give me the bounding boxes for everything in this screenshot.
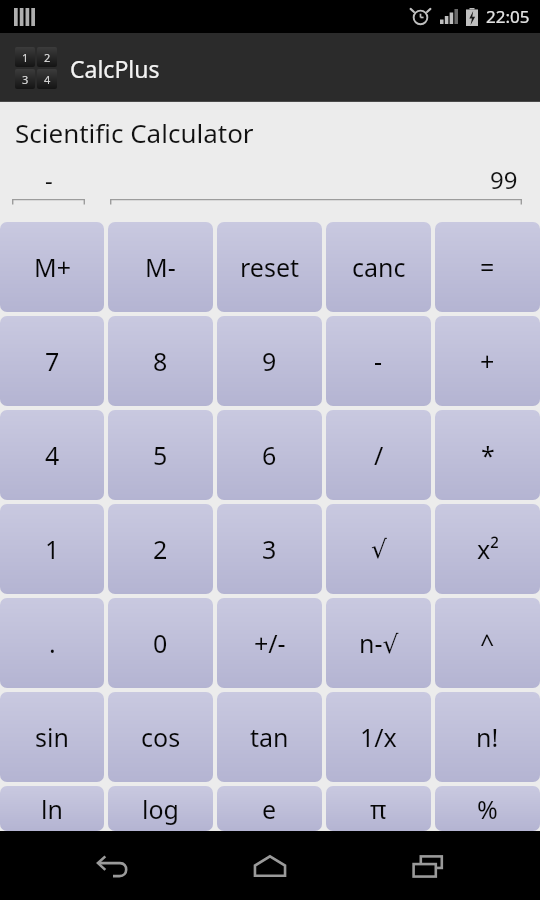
staticText: ^ bbox=[480, 626, 495, 660]
button[interactable]: 2 bbox=[108, 504, 213, 594]
staticText: π bbox=[370, 792, 387, 826]
button[interactable]: π bbox=[326, 786, 431, 831]
button[interactable]: 0 bbox=[108, 598, 213, 688]
staticText: +/- bbox=[254, 626, 286, 660]
button[interactable]: - bbox=[326, 316, 431, 406]
button[interactable]: n-√ bbox=[326, 598, 431, 688]
staticText: cos bbox=[141, 720, 181, 754]
staticText: % bbox=[477, 792, 498, 826]
button[interactable]: tan bbox=[217, 692, 322, 782]
staticText: 2 bbox=[44, 50, 51, 65]
button[interactable]: x² bbox=[435, 504, 540, 594]
staticText: 1 bbox=[22, 50, 29, 65]
staticText: sin bbox=[35, 720, 69, 754]
button[interactable]: 1/x bbox=[326, 692, 431, 782]
staticText: 3 bbox=[22, 72, 29, 87]
button[interactable]: Recent apps bbox=[383, 831, 473, 900]
staticText: 99 bbox=[490, 163, 518, 196]
button[interactable]: e bbox=[217, 786, 322, 831]
button[interactable]: 6 bbox=[217, 410, 322, 500]
button[interactable]: M- bbox=[108, 222, 213, 312]
staticText: tan bbox=[250, 720, 289, 754]
staticText: x² bbox=[477, 532, 499, 566]
staticText: 0 bbox=[153, 626, 168, 660]
staticText: 1/x bbox=[360, 720, 397, 754]
staticText: Scientific Calculator bbox=[15, 115, 254, 150]
staticText: 7 bbox=[45, 344, 60, 378]
staticText: CalcPlus bbox=[70, 53, 160, 84]
button[interactable]: sin bbox=[0, 692, 104, 782]
button[interactable]: Home bbox=[225, 831, 315, 900]
staticText: - bbox=[45, 163, 53, 196]
staticText: e bbox=[262, 792, 277, 826]
staticText: canc bbox=[352, 250, 406, 284]
staticText: * bbox=[481, 438, 495, 472]
staticText: M+ bbox=[34, 250, 71, 284]
staticText: / bbox=[374, 438, 384, 472]
button[interactable]: 99 bbox=[110, 162, 522, 204]
button[interactable]: + bbox=[435, 316, 540, 406]
staticText: 6 bbox=[262, 438, 277, 472]
button[interactable]: Back bbox=[68, 831, 158, 900]
staticText: 9 bbox=[262, 344, 277, 378]
staticText: √ bbox=[371, 535, 387, 564]
button[interactable]: 9 bbox=[217, 316, 322, 406]
button[interactable]: ln bbox=[0, 786, 104, 831]
staticText: ln bbox=[41, 792, 63, 826]
staticText: 5 bbox=[153, 438, 168, 472]
button[interactable]: 4 bbox=[0, 410, 104, 500]
staticText: 1 bbox=[45, 532, 60, 566]
staticText: 4 bbox=[44, 72, 51, 87]
staticText: 2 bbox=[153, 532, 168, 566]
button[interactable]: log bbox=[108, 786, 213, 831]
staticText: log bbox=[142, 792, 179, 826]
staticText: n-√ bbox=[359, 626, 399, 660]
staticText: 22:05 bbox=[486, 5, 530, 28]
staticText: . bbox=[49, 626, 56, 660]
button[interactable]: +/- bbox=[217, 598, 322, 688]
staticText: n! bbox=[476, 720, 499, 754]
staticText: 8 bbox=[153, 344, 168, 378]
button[interactable]: . bbox=[0, 598, 104, 688]
button[interactable]: - bbox=[12, 162, 85, 204]
staticText: M- bbox=[145, 250, 176, 284]
button[interactable]: % bbox=[435, 786, 540, 831]
staticText: reset bbox=[240, 250, 300, 284]
button[interactable]: 1 bbox=[0, 504, 104, 594]
button[interactable]: n! bbox=[435, 692, 540, 782]
button[interactable]: / bbox=[326, 410, 431, 500]
button[interactable]: ^ bbox=[435, 598, 540, 688]
staticText: + bbox=[480, 344, 495, 378]
button[interactable]: reset bbox=[217, 222, 322, 312]
staticText: = bbox=[480, 250, 495, 284]
staticText: 4 bbox=[45, 438, 60, 472]
button[interactable]: canc bbox=[326, 222, 431, 312]
button[interactable]: cos bbox=[108, 692, 213, 782]
button[interactable]: 7 bbox=[0, 316, 104, 406]
button[interactable]: * bbox=[435, 410, 540, 500]
button[interactable]: 3 bbox=[217, 504, 322, 594]
button[interactable]: 8 bbox=[108, 316, 213, 406]
staticText: 3 bbox=[262, 532, 277, 566]
button[interactable]: = bbox=[435, 222, 540, 312]
staticText: - bbox=[374, 344, 383, 378]
button[interactable]: √ bbox=[326, 504, 431, 594]
button[interactable]: 5 bbox=[108, 410, 213, 500]
button[interactable]: M+ bbox=[0, 222, 104, 312]
